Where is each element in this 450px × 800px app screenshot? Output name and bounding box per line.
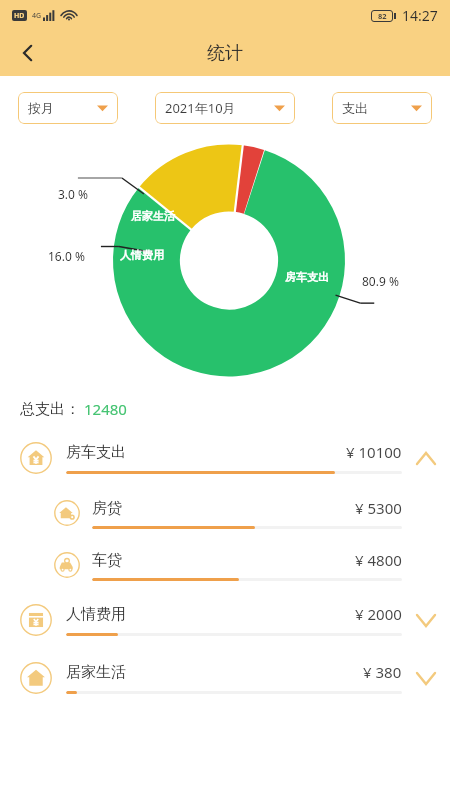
staticText: 总支出：	[20, 400, 80, 419]
staticText: ¥ 10100	[346, 442, 402, 462]
button[interactable]: 2021年10月	[155, 92, 295, 124]
button[interactable]: 展开	[402, 649, 450, 707]
button[interactable]: 车贷	[0, 539, 450, 591]
staticText: HD	[14, 11, 25, 21]
button[interactable]: 返回	[8, 33, 48, 73]
staticText: 2021年10月	[165, 99, 236, 117]
button[interactable]: 支出	[332, 92, 432, 124]
staticText: 居家生活	[66, 663, 126, 682]
staticText: 房车支出	[285, 270, 329, 284]
staticText: 人情费用	[66, 605, 126, 624]
staticText: 82	[378, 11, 387, 21]
staticText: ¥ 5300	[355, 498, 402, 518]
button[interactable]: 展开	[402, 591, 450, 649]
staticText: 80.9 %	[362, 273, 399, 289]
staticText: 房车支出	[66, 443, 126, 462]
staticText: 统计	[207, 42, 243, 65]
button[interactable]: 人情费用	[0, 591, 450, 649]
staticText: 4G	[32, 11, 42, 21]
staticText: ¥ 4800	[355, 550, 402, 570]
staticText: 支出	[342, 100, 368, 116]
staticText: 12480	[84, 399, 127, 419]
staticText: 3.0 %	[58, 186, 89, 202]
staticText: 车贷	[92, 551, 122, 570]
button[interactable]: 房车支出	[0, 429, 450, 487]
button[interactable]: 房贷	[0, 487, 450, 539]
staticText: 人情费用	[120, 248, 164, 262]
staticText: ¥ 380	[363, 662, 402, 682]
staticText: 居家生活	[131, 209, 175, 223]
staticText: 14:27	[402, 6, 438, 25]
staticText: 16.0 %	[48, 248, 85, 264]
button[interactable]: 收起	[402, 429, 450, 487]
staticText: ¥ 2000	[355, 604, 402, 624]
staticText: 房贷	[92, 499, 122, 518]
button[interactable]: 居家生活	[0, 649, 450, 707]
button[interactable]: 按月	[18, 92, 118, 124]
staticText: 按月	[28, 100, 54, 116]
